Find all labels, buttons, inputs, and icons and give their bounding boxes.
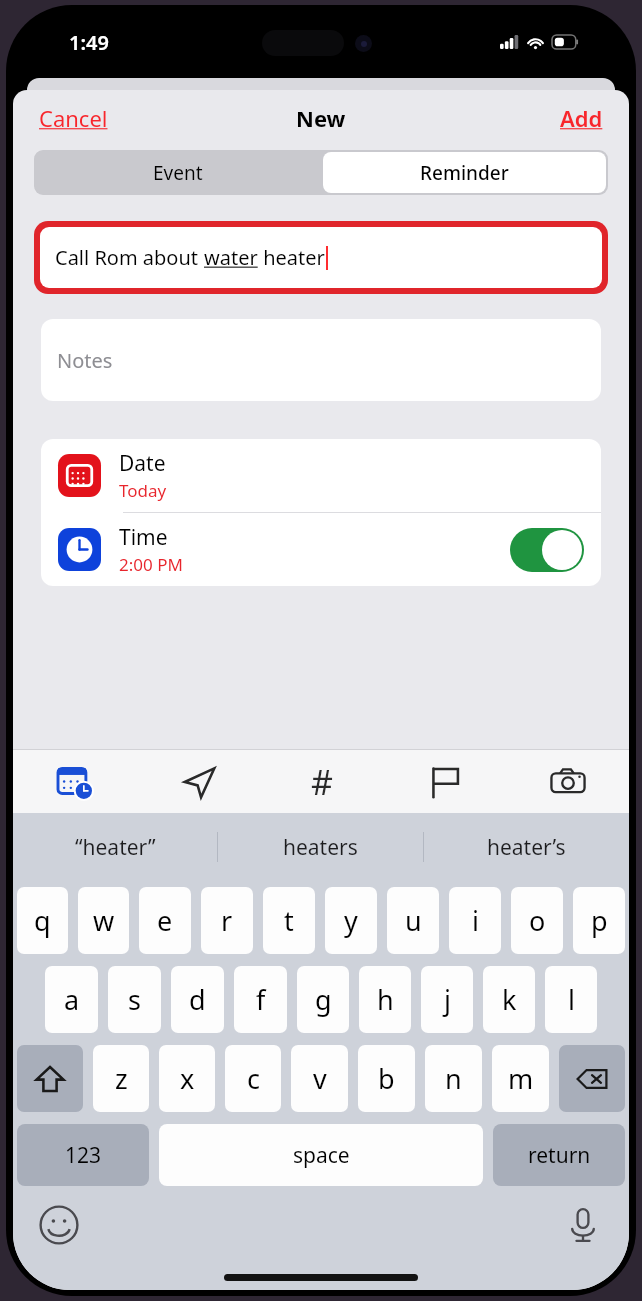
- button[interactable]: p: [573, 887, 625, 954]
- button[interactable]: heaters: [218, 813, 423, 881]
- staticText: t: [284, 902, 294, 939]
- staticText: l: [568, 981, 575, 1018]
- button[interactable]: k: [483, 966, 535, 1033]
- button[interactable]: s: [108, 966, 161, 1033]
- staticText: Notes: [57, 347, 113, 374]
- staticText: h: [377, 981, 394, 1018]
- button[interactable]: i: [449, 887, 501, 954]
- staticText: #: [311, 759, 333, 805]
- staticText: “heater”: [75, 833, 156, 862]
- staticText: r: [221, 902, 233, 939]
- staticText: q: [34, 902, 51, 939]
- staticText: a: [64, 981, 80, 1018]
- button[interactable]: o: [511, 887, 563, 954]
- button[interactable]: Call Rom about: [40, 227, 602, 288]
- button[interactable]: m: [492, 1045, 549, 1112]
- button[interactable]: v: [291, 1045, 348, 1112]
- staticText: 1:49: [69, 29, 109, 56]
- staticText: o: [529, 902, 546, 939]
- staticText: w: [93, 902, 115, 939]
- button[interactable]: n: [425, 1045, 482, 1112]
- staticText: Cancel: [39, 103, 108, 133]
- staticText: heaters: [283, 833, 358, 862]
- button[interactable]: Cancel: [13, 95, 134, 141]
- button[interactable]: z: [93, 1045, 149, 1112]
- staticText: i: [472, 902, 479, 939]
- staticText: Reminder: [420, 160, 509, 186]
- button[interactable]: Camera: [506, 750, 629, 813]
- button[interactable]: j: [421, 966, 473, 1033]
- button[interactable]: f: [234, 966, 287, 1033]
- staticText: c: [247, 1060, 260, 1097]
- button[interactable]: Emoji: [35, 1201, 83, 1249]
- staticText: Time: [119, 523, 168, 552]
- button[interactable]: x: [159, 1045, 215, 1112]
- staticText: Date: [119, 449, 166, 478]
- button[interactable]: Date and time: [13, 750, 137, 813]
- staticText: f: [256, 981, 266, 1018]
- button[interactable]: Reminder: [323, 152, 606, 193]
- staticText: Event: [153, 160, 203, 186]
- staticText: New: [296, 103, 346, 133]
- button[interactable]: “heater”: [13, 813, 217, 881]
- button[interactable]: d: [171, 966, 224, 1033]
- button[interactable]: space: [159, 1124, 483, 1186]
- staticText: u: [405, 902, 422, 939]
- staticText: s: [128, 981, 141, 1018]
- staticText: b: [378, 1060, 395, 1097]
- button[interactable]: Add: [534, 95, 629, 141]
- button[interactable]: u: [387, 887, 439, 954]
- button[interactable]: Flag: [383, 750, 506, 813]
- button[interactable]: e: [139, 887, 191, 954]
- button[interactable]: Tag: [260, 750, 383, 813]
- staticText: j: [444, 981, 451, 1018]
- button[interactable]: b: [358, 1045, 415, 1112]
- staticText: Today: [119, 479, 167, 502]
- button[interactable]: g: [297, 966, 349, 1033]
- staticText: return: [528, 1141, 591, 1170]
- staticText: n: [445, 1060, 462, 1097]
- staticText: heater: [258, 244, 325, 271]
- staticText: k: [502, 981, 517, 1018]
- staticText: y: [344, 902, 358, 939]
- button[interactable]: h: [359, 966, 411, 1033]
- staticText: v: [313, 1060, 327, 1097]
- staticText: m: [508, 1060, 534, 1097]
- button[interactable]: Time: [41, 513, 601, 586]
- button[interactable]: Date: [41, 439, 601, 512]
- staticText: d: [189, 981, 206, 1018]
- staticText: space: [293, 1141, 350, 1170]
- staticText: Add: [560, 103, 603, 133]
- staticText: z: [115, 1060, 128, 1097]
- button[interactable]: c: [225, 1045, 281, 1112]
- button[interactable]: t: [263, 887, 315, 954]
- button[interactable]: Backspace: [559, 1045, 625, 1112]
- button[interactable]: a: [45, 966, 98, 1033]
- staticText: e: [157, 902, 173, 939]
- button[interactable]: Notes: [41, 319, 601, 401]
- button[interactable]: l: [545, 966, 597, 1033]
- staticText: heater’s: [487, 833, 566, 862]
- button[interactable]: Event: [34, 150, 321, 195]
- button[interactable]: Location: [137, 750, 260, 813]
- staticText: p: [591, 902, 608, 939]
- button[interactable]: heater’s: [424, 813, 629, 881]
- button[interactable]: w: [78, 887, 129, 954]
- button[interactable]: 123: [17, 1124, 149, 1186]
- button[interactable]: y: [325, 887, 377, 954]
- button[interactable]: return: [493, 1124, 625, 1186]
- button[interactable]: q: [17, 887, 68, 954]
- staticText: Call Rom about: [55, 244, 204, 271]
- button[interactable]: Dictation: [559, 1201, 607, 1249]
- staticText: x: [180, 1060, 195, 1097]
- staticText: 2:00 PM: [119, 553, 183, 576]
- staticText: g: [315, 981, 332, 1018]
- button[interactable]: Time toggle: [510, 528, 584, 572]
- button[interactable]: r: [201, 887, 253, 954]
- staticText: 123: [65, 1141, 102, 1170]
- button[interactable]: Shift: [17, 1045, 83, 1112]
- staticText: water: [204, 244, 258, 271]
